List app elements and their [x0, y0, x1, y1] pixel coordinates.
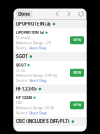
staticText: 1.02 [16, 101, 22, 105]
staticText: HF 1.2345 [16, 86, 37, 91]
staticText: 22 U/L [16, 69, 26, 72]
staticText: VIEW [73, 71, 81, 75]
staticText: Reference Range: <75 [16, 41, 51, 45]
button[interactable]: Forward [67, 11, 71, 17]
button[interactable]: VIEW [70, 69, 84, 77]
staticText: SGOT [16, 54, 28, 59]
staticText: LIPOPROTEIN (a) [16, 30, 44, 35]
button[interactable]: VIEW [70, 36, 84, 44]
staticText: Done [18, 11, 30, 17]
button[interactable]: Quest Diag. [29, 79, 47, 82]
staticText: Quest Diag. [29, 79, 47, 82]
staticText: Source: [16, 111, 28, 115]
staticText: Source: [16, 79, 28, 82]
staticText: VIEW [73, 38, 81, 42]
button[interactable]: VIEW [70, 101, 84, 109]
staticText: SGOT [16, 63, 26, 67]
staticText: Source: [16, 46, 28, 50]
staticText: Reference Range: 0-40 U/L [16, 74, 58, 77]
staticText: HF 1.2345 [16, 95, 32, 100]
staticText: VIEW [73, 103, 81, 107]
button[interactable]: Quest Diag. [29, 46, 47, 50]
staticText: LIPOPROTEIN (a) [16, 21, 51, 26]
button[interactable]: Reload [78, 11, 84, 17]
button[interactable]: Quest Diag. [29, 111, 47, 115]
button[interactable]: Done [16, 10, 32, 18]
button[interactable]: Back [55, 11, 60, 17]
staticText: Reference Range: 20-40 [16, 106, 54, 110]
staticText: CBC (INCLUDES DIFF/PLT) [16, 119, 70, 124]
staticText: Quest Diag. [29, 111, 47, 115]
staticText: Quest Diag. [29, 46, 47, 50]
staticText: 12 nmol/L [16, 36, 31, 40]
